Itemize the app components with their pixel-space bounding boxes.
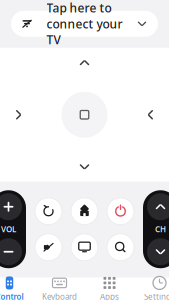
staticText: Tap here to connect your TV (46, 0, 122, 48)
button[interactable]: Left (7, 100, 29, 130)
button[interactable]: Down (69, 156, 99, 178)
button[interactable]: Apps (88, 277, 130, 300)
staticText: VOL (1, 224, 16, 234)
button[interactable]: Back (34, 197, 63, 226)
staticText: Settings (144, 291, 169, 300)
button[interactable]: Keyboard (38, 277, 80, 300)
button[interactable]: Control (0, 277, 30, 300)
button[interactable]: Up (69, 52, 99, 74)
button[interactable]: Volume up (0, 192, 25, 221)
button[interactable]: Channel down (144, 237, 169, 266)
button[interactable]: Tap here to connect your TV (11, 11, 158, 37)
button[interactable]: Input source (70, 233, 99, 262)
button[interactable]: Channel up (144, 192, 169, 221)
button[interactable]: Mute (34, 233, 63, 262)
staticText: Control (0, 291, 23, 300)
button[interactable]: Right (139, 100, 161, 130)
staticText: Apps (100, 291, 119, 300)
button[interactable]: Power (106, 197, 135, 226)
button[interactable]: Volume down (0, 237, 25, 266)
button[interactable]: Select (61, 92, 107, 138)
staticText: CH (155, 224, 166, 234)
staticText: Keyboard (42, 291, 77, 300)
button[interactable]: Settings (138, 277, 169, 300)
button[interactable]: Home (70, 197, 99, 226)
button[interactable]: Search (106, 233, 135, 262)
